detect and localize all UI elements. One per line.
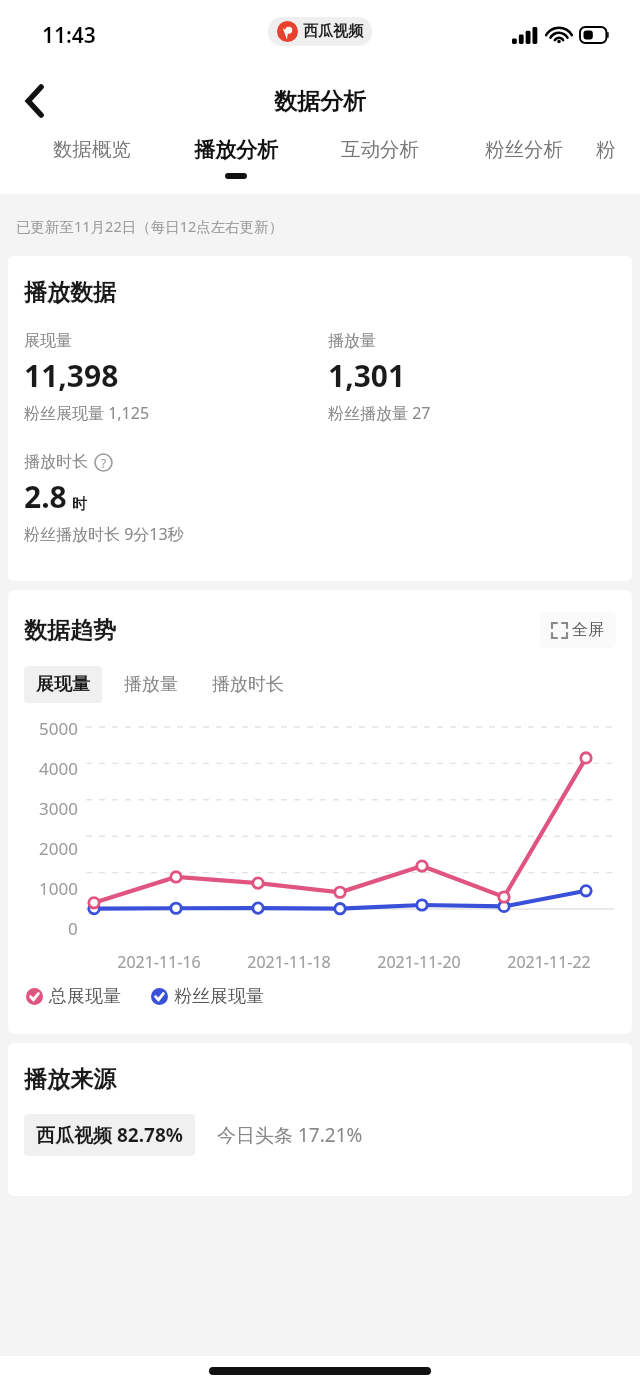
button[interactable]: 展现量 [24,666,102,703]
staticText: 粉丝播放量 27 [328,402,431,424]
button[interactable]: 数据概览 [20,132,164,194]
staticText: 数据概览 [53,137,131,162]
staticText: 1000 [39,877,78,900]
button[interactable]: 粉丝分析 [452,132,596,194]
staticText: 粉丝分析 [485,137,563,162]
staticText: 播放量 [124,673,178,696]
staticText: 已更新至11月22日（每日12点左右更新） [16,216,284,236]
button[interactable]: 全屏 [540,612,616,648]
staticText: 播放分析 [194,137,278,163]
staticText: 粉丝展现量 [174,985,264,1008]
staticText: 2021-11-20 [377,951,461,973]
button[interactable]: 今日头条 17.21% [209,1114,371,1156]
staticText: 2000 [39,837,78,860]
staticText: 11,398 [24,355,119,396]
button[interactable]: 粉 [596,132,626,194]
button[interactable]: 帮助 [94,453,113,472]
staticText: 时 [72,495,87,514]
staticText: 展现量 [24,331,72,351]
staticText: 2021-11-16 [117,951,201,973]
staticText: 互动分析 [341,137,419,162]
staticText: 1,301 [328,355,406,396]
staticText: 播放来源 [24,1065,116,1094]
staticText: 播放时长 [212,673,284,696]
staticText: 全屏 [572,620,604,640]
staticText: 总展现量 [49,985,121,1008]
staticText: 11:43 [42,21,96,50]
button[interactable]: 西瓜视频 82.78% [24,1114,195,1156]
staticText: 粉 [596,137,616,162]
staticText: 2021-11-18 [247,951,331,973]
staticText: ? [101,455,107,471]
staticText: 播放量 [328,331,376,351]
staticText: 播放时长 [24,452,88,472]
staticText: 2.8 [24,476,67,517]
button[interactable]: 播放量 [112,666,190,703]
button[interactable]: Back [0,70,70,132]
staticText: 2021-11-22 [507,951,591,973]
button[interactable]: 互动分析 [308,132,452,194]
staticText: 0 [68,917,78,940]
button[interactable]: 总展现量 [26,985,121,1008]
staticText: 数据分析 [274,87,366,116]
button[interactable]: 粉丝展现量 [151,985,264,1008]
button[interactable]: 播放分析 [164,132,308,194]
staticText: 3000 [39,797,78,820]
staticText: 播放数据 [24,278,116,307]
staticText: 粉丝播放时长 9分13秒 [24,523,184,545]
staticText: 数据趋势 [24,616,116,645]
staticText: 西瓜视频 [303,22,363,41]
staticText: 4000 [39,757,78,780]
button[interactable]: 播放时长 [200,666,296,703]
staticText: 5000 [39,717,78,740]
staticText: 粉丝展现量 1,125 [24,402,150,424]
staticText: 西瓜视频 82.78% [36,1122,183,1148]
staticText: 今日头条 17.21% [217,1122,363,1148]
staticText: 展现量 [36,673,90,696]
